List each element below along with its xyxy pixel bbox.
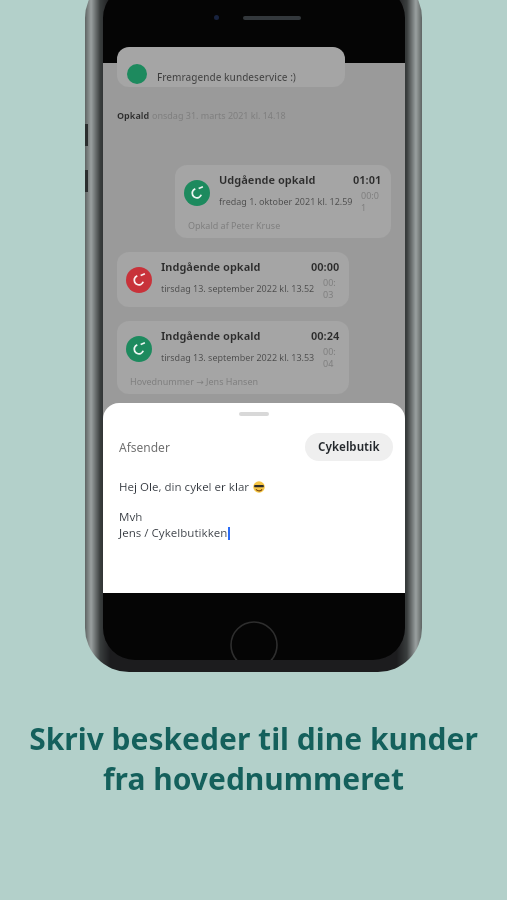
staticText: Udgående opkald (219, 172, 316, 187)
staticText: Hej Ole, din cykel er klar (119, 479, 253, 495)
staticText: tirsdag 13. september 2022 kl. 13.53 (161, 351, 315, 363)
staticText: tirsdag 13. september 2022 kl. 13.52 (161, 282, 315, 294)
staticText: Afsender (119, 439, 170, 455)
staticText: Jens / Cykelbutikken (119, 525, 228, 541)
button[interactable]: Udgående opkald (175, 165, 391, 238)
staticText: 01:01 (353, 172, 382, 187)
staticText: onsdag 31. marts 2021 kl. 14.18 (152, 109, 286, 121)
staticText: Mvh (119, 509, 143, 525)
staticText: Opkald af Peter Kruse (188, 219, 281, 231)
staticText: fredag 1. oktober 2021 kl. 12.59 (219, 195, 353, 207)
staticText: 00:00 (311, 259, 340, 274)
button[interactable]: Cykelbutik (305, 433, 393, 461)
staticText: Fremragende kundeservice :) (157, 70, 296, 84)
button[interactable]: Indgående opkald (117, 252, 349, 307)
staticText: Indgående opkald (161, 328, 261, 343)
staticText: Skriv beskeder til dine kunder fra hoved… (24, 718, 483, 799)
staticText: 00:04 (323, 345, 340, 369)
staticText: Opkald (117, 109, 152, 121)
staticText: 00:03 (323, 276, 340, 300)
staticText: 00:01 (361, 189, 382, 213)
staticText: 00:24 (311, 328, 340, 343)
staticText: Cykelbutik (318, 439, 380, 455)
button[interactable]: Fremragende kundeservice :) (117, 47, 345, 87)
button[interactable]: Home (230, 621, 278, 660)
staticText: Indgående opkald (161, 259, 261, 274)
button[interactable]: Indgående opkald (117, 321, 349, 394)
staticText: Hovednummer → Jens Hansen (130, 375, 259, 387)
